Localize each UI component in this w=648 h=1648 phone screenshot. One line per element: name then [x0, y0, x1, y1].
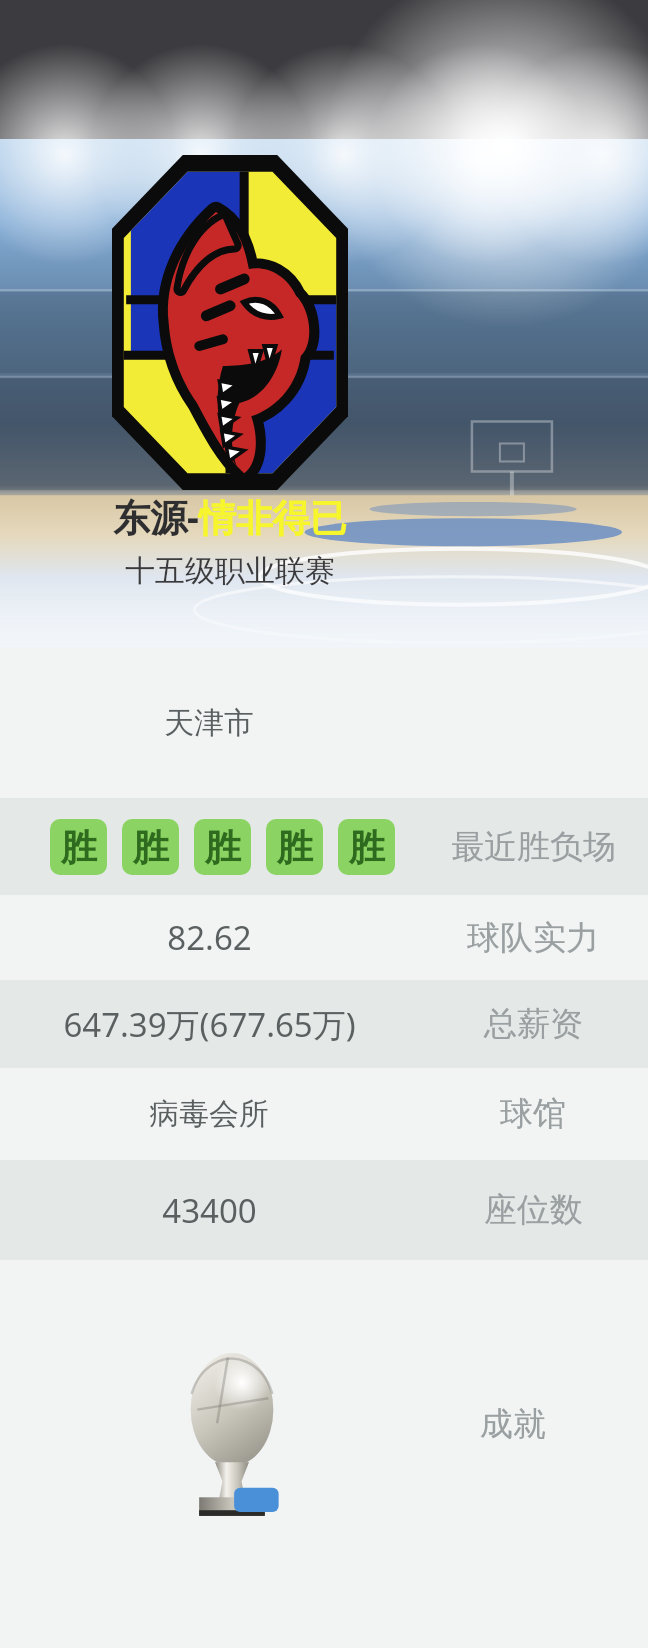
staticText: 成就 — [398, 1403, 628, 1445]
button[interactable]: 82.62 — [0, 895, 648, 980]
staticText: 东源-情非得已 — [113, 491, 347, 542]
staticText: 43400 — [162, 1188, 257, 1233]
staticText: 胜 — [133, 825, 169, 870]
staticText: 十五级职业联赛 — [125, 552, 335, 590]
staticText: 647.39万(677.65万) — [63, 1002, 356, 1047]
staticText: 胜 — [277, 825, 313, 870]
staticText: 病毒会所 — [149, 1095, 269, 1133]
other: 球队徽标 — [112, 155, 348, 490]
staticText: 总薪资 — [484, 1003, 583, 1045]
button[interactable]: 成就奖杯 — [0, 1260, 648, 1648]
button[interactable]: 43400 — [0, 1160, 648, 1260]
other: 成就奖杯 — [179, 1336, 285, 1526]
button[interactable]: 胜 — [0, 798, 648, 895]
staticText: 球队实力 — [467, 917, 599, 959]
staticText: 座位数 — [484, 1189, 583, 1231]
button[interactable]: 647.39万(677.65万) — [0, 980, 648, 1068]
staticText: 胜 — [205, 825, 241, 870]
staticText: 胜 — [349, 825, 385, 870]
button[interactable]: 球队徽标 — [0, 139, 648, 648]
staticText: 胜 — [61, 825, 97, 870]
staticText: 最近胜负场 — [451, 826, 616, 868]
staticText: 82.62 — [167, 915, 252, 960]
staticText: 天津市 — [164, 704, 254, 742]
button[interactable]: 病毒会所 — [0, 1068, 648, 1160]
button[interactable]: 天津市 — [0, 648, 648, 798]
staticText: 球馆 — [500, 1093, 566, 1135]
